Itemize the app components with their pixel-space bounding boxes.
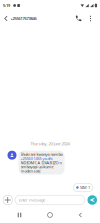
staticText: NDIOMCA DXABIZO n xyxy=(20,160,61,165)
staticText: Thursday, 20 June 2024 xyxy=(30,141,69,146)
staticText: +255617673846 xyxy=(10,16,36,21)
staticText: Enter message xyxy=(19,197,45,203)
button[interactable]: More options xyxy=(84,11,96,25)
staticText: ambayapi usikume xyxy=(20,164,53,169)
button[interactable]: Send xyxy=(87,195,97,205)
staticText: +25563 1455 ya-dhi xyxy=(20,156,52,161)
button[interactable]: Back xyxy=(69,209,91,221)
button[interactable]: Call xyxy=(72,11,84,25)
staticText: moden sote xyxy=(20,168,40,174)
button[interactable]: Add attachment xyxy=(3,195,12,205)
button[interactable]: Recent apps xyxy=(8,209,30,221)
button[interactable]: Back xyxy=(1,11,10,25)
button[interactable]: SIM 1 xyxy=(73,183,93,191)
staticText: SIM 1 xyxy=(80,185,90,190)
staticText: Shukrani kwanya namba xyxy=(20,151,62,157)
staticText: 5:19 xyxy=(3,3,10,8)
button[interactable]: Home xyxy=(39,209,61,221)
